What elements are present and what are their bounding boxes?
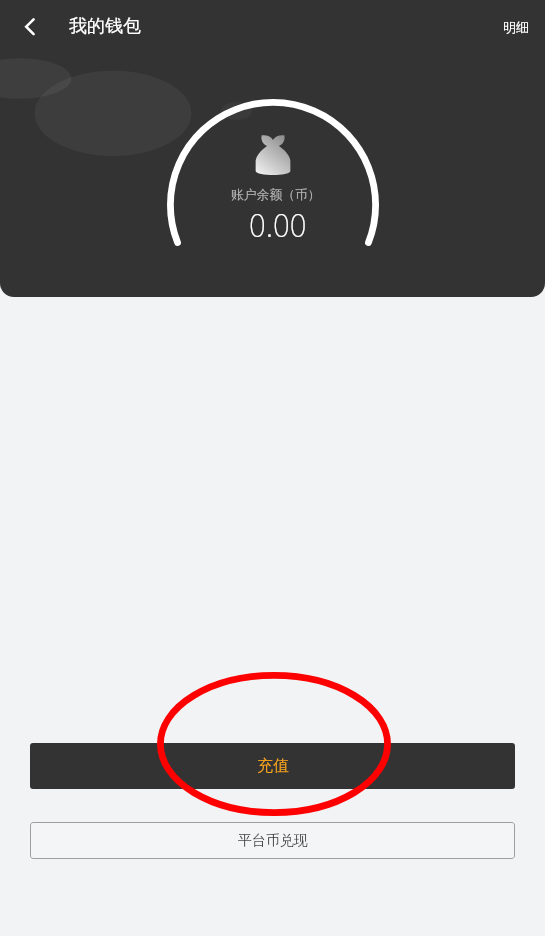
staticText: 充值 xyxy=(257,756,289,776)
button[interactable]: 充值 xyxy=(30,743,515,789)
staticText: 明细 xyxy=(503,19,529,35)
staticText: 我的钱包 xyxy=(69,15,141,38)
staticText: 平台币兑现 xyxy=(238,832,308,850)
staticText: 0.00 xyxy=(249,200,307,246)
button[interactable]: 明细 xyxy=(487,4,545,50)
staticText: 账户余额（币） xyxy=(231,187,321,203)
button[interactable]: Back xyxy=(6,0,54,53)
button[interactable]: 平台币兑现 xyxy=(30,822,515,859)
